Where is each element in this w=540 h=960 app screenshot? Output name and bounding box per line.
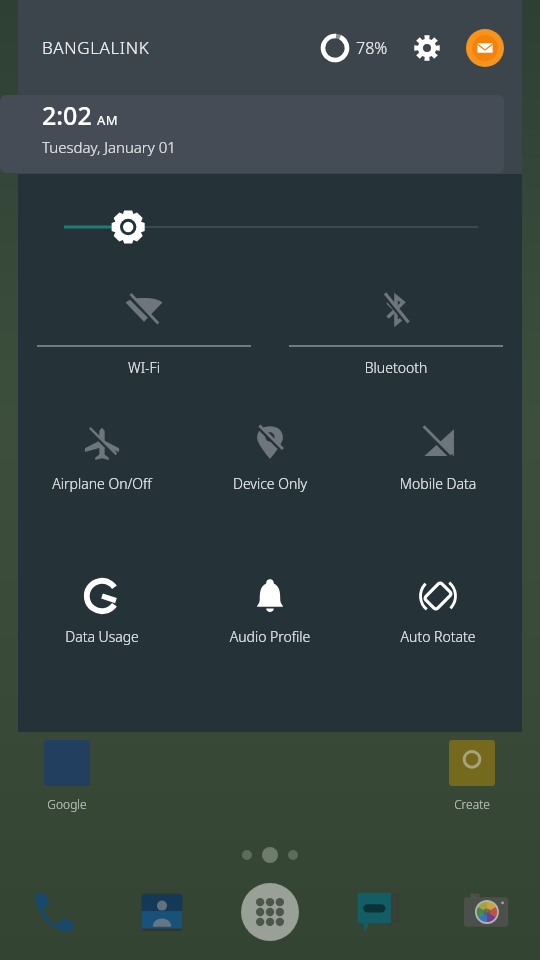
button[interactable]: Auto Rotate (354, 565, 522, 646)
staticText: Device Only (186, 474, 354, 493)
staticText: Bluetooth (270, 358, 522, 377)
staticText: Data Usage (18, 627, 186, 646)
button[interactable]: Email (466, 29, 504, 67)
staticText: Airplane On/Off (18, 474, 186, 493)
staticText: Audio Profile (186, 627, 354, 646)
button[interactable] (441, 732, 503, 794)
button[interactable]: Apps (238, 880, 302, 944)
button[interactable]: Mobile Data (354, 412, 522, 493)
button[interactable]: Audio Profile (186, 565, 354, 646)
button[interactable]: Device Only (186, 412, 354, 493)
staticText: 2:02 (42, 98, 92, 132)
staticText: Auto Rotate (354, 627, 522, 646)
button[interactable]: WI-Fi (18, 274, 270, 377)
staticText: WI-Fi (18, 358, 270, 377)
button[interactable]: Camera (454, 880, 518, 944)
button[interactable]: Settings (410, 31, 444, 65)
staticText: Tuesday, January 01 (42, 137, 176, 157)
staticText: Create (432, 796, 512, 812)
button[interactable]: Battery 78 percent (320, 33, 350, 63)
button[interactable] (36, 732, 98, 794)
staticText: BANGLALINK (42, 36, 150, 59)
staticText: 78% (356, 37, 388, 59)
button[interactable]: Bluetooth (270, 274, 522, 377)
button[interactable]: Contacts (130, 880, 194, 944)
staticText: Google (27, 796, 107, 812)
staticText: Mobile Data (354, 474, 522, 493)
button[interactable]: Data Usage (18, 565, 186, 646)
button[interactable]: Brightness (18, 204, 522, 250)
button[interactable]: Airplane On/Off (18, 412, 186, 493)
staticText: AM (97, 111, 119, 129)
button[interactable]: Messages (346, 880, 410, 944)
button[interactable]: Phone (22, 880, 86, 944)
